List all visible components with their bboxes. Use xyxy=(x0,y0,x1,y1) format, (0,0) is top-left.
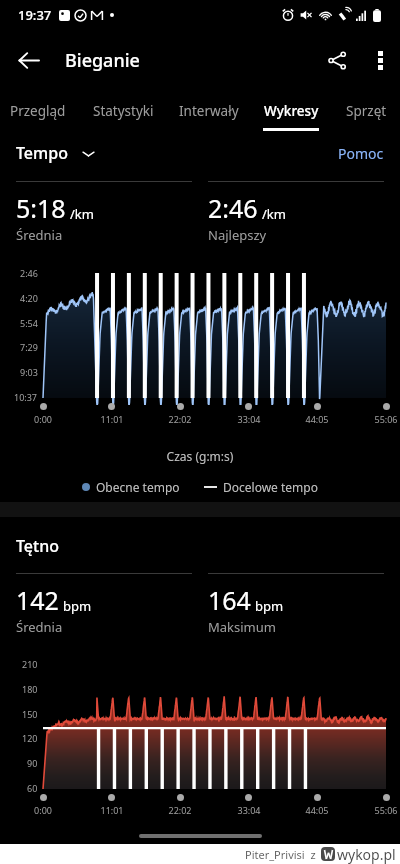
staticText: Piter_Privisi z xyxy=(245,847,316,862)
staticText: 55:06 xyxy=(366,413,400,425)
button[interactable]: More options xyxy=(360,40,400,80)
staticText: 120 xyxy=(22,732,38,744)
staticText: Pomoc xyxy=(338,144,384,163)
staticText: 5:54 xyxy=(20,317,38,329)
staticText: /km xyxy=(70,205,94,223)
staticText: 180 xyxy=(22,683,38,695)
button[interactable]: Share xyxy=(314,37,360,83)
staticText: 150 xyxy=(22,708,38,720)
button[interactable]: Wykresy xyxy=(260,96,322,131)
staticText: 55:06 xyxy=(366,804,400,816)
button[interactable]: Back xyxy=(0,32,56,88)
staticText: 0:00 xyxy=(23,413,63,425)
button[interactable]: Sprzęt xyxy=(338,96,394,131)
staticText: Sprzęt xyxy=(346,102,387,120)
staticText: 7:29 xyxy=(20,341,38,353)
staticText: 19:37 xyxy=(18,6,52,24)
staticText: Maksimum xyxy=(208,618,276,636)
staticText: Wykresy xyxy=(264,102,319,120)
staticText: 4:20 xyxy=(20,292,38,304)
staticText: Statystyki xyxy=(93,102,154,120)
staticText: 11:01 xyxy=(92,804,132,816)
staticText: bpm xyxy=(255,597,284,615)
staticText: 5:18 xyxy=(16,191,66,225)
staticText: 33:04 xyxy=(229,413,269,425)
staticText: 164 xyxy=(208,583,251,617)
button[interactable]: Interwały xyxy=(173,96,245,131)
staticText: 210 xyxy=(22,658,38,670)
staticText: Średnia xyxy=(16,618,63,636)
button[interactable]: Przegląd xyxy=(4,96,72,131)
staticText: 44:05 xyxy=(297,413,337,425)
staticText: Przegląd xyxy=(10,102,66,120)
button[interactable]: Pomoc xyxy=(338,144,384,163)
staticText: 22:02 xyxy=(160,413,200,425)
button[interactable]: Statystyki xyxy=(83,96,163,131)
staticText: 0:00 xyxy=(23,804,63,816)
staticText: Tętno xyxy=(16,535,59,557)
staticText: 90 xyxy=(27,757,38,769)
staticText: /km xyxy=(262,205,286,223)
staticText: 22:02 xyxy=(160,804,200,816)
staticText: Średnia xyxy=(16,226,63,244)
staticText: Tempo xyxy=(16,142,68,164)
staticText: Bieganie xyxy=(65,48,140,73)
staticText: 44:05 xyxy=(297,804,337,816)
staticText: bpm xyxy=(63,597,92,615)
staticText: Interwały xyxy=(179,102,239,120)
staticText: Obecne tempo xyxy=(96,479,180,495)
staticText: 2:46 xyxy=(208,191,258,225)
staticText: Najlepszy xyxy=(208,226,267,244)
staticText: 9:03 xyxy=(20,366,38,378)
staticText: wykop.pl xyxy=(337,845,396,864)
staticText: 11:01 xyxy=(92,413,132,425)
staticText: 10:37 xyxy=(14,391,38,403)
staticText: 2:46 xyxy=(20,267,38,279)
staticText: Czas (g:m:s) xyxy=(0,448,400,464)
staticText: Docelowe tempo xyxy=(223,479,318,495)
staticText: 142 xyxy=(16,583,59,617)
staticText: 33:04 xyxy=(229,804,269,816)
staticText: 60 xyxy=(27,782,38,794)
